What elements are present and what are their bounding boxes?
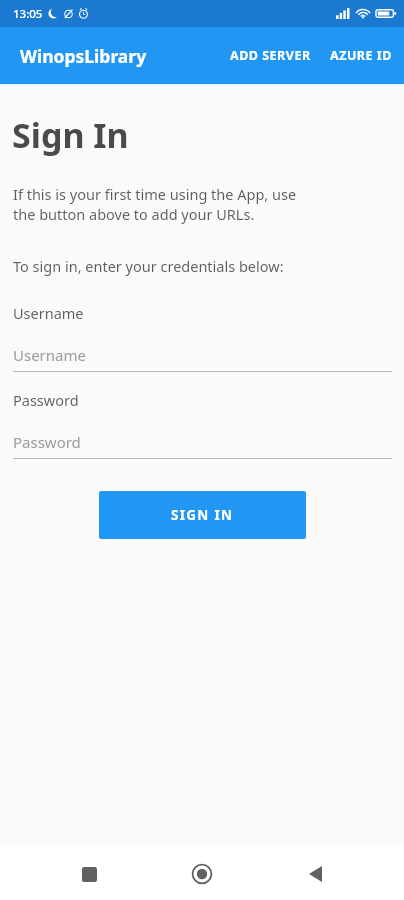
button[interactable]: Recent apps [65, 850, 113, 898]
button[interactable]: AZURE ID [322, 37, 400, 74]
button[interactable]: Password [13, 432, 392, 459]
staticText: 13:05 [13, 6, 43, 22]
staticText: Username [13, 345, 86, 365]
staticText: SIGN IN [171, 506, 234, 524]
staticText: If this is your first time using the App… [13, 184, 297, 225]
staticText: To sign in, enter your credentials below… [13, 256, 284, 276]
button[interactable]: ADD SERVER [222, 37, 319, 74]
staticText: ADD SERVER [230, 47, 311, 64]
staticText: Username [13, 303, 84, 323]
staticText: Password [13, 432, 81, 452]
button[interactable]: Home [178, 850, 226, 898]
button[interactable]: Back [291, 850, 339, 898]
staticText: Sign In [12, 112, 129, 158]
staticText: AZURE ID [330, 47, 392, 64]
button[interactable]: SIGN IN [99, 491, 306, 539]
button[interactable]: Username [13, 345, 392, 372]
staticText: WinopsLibrary [20, 44, 147, 68]
staticText: Password [13, 390, 79, 410]
